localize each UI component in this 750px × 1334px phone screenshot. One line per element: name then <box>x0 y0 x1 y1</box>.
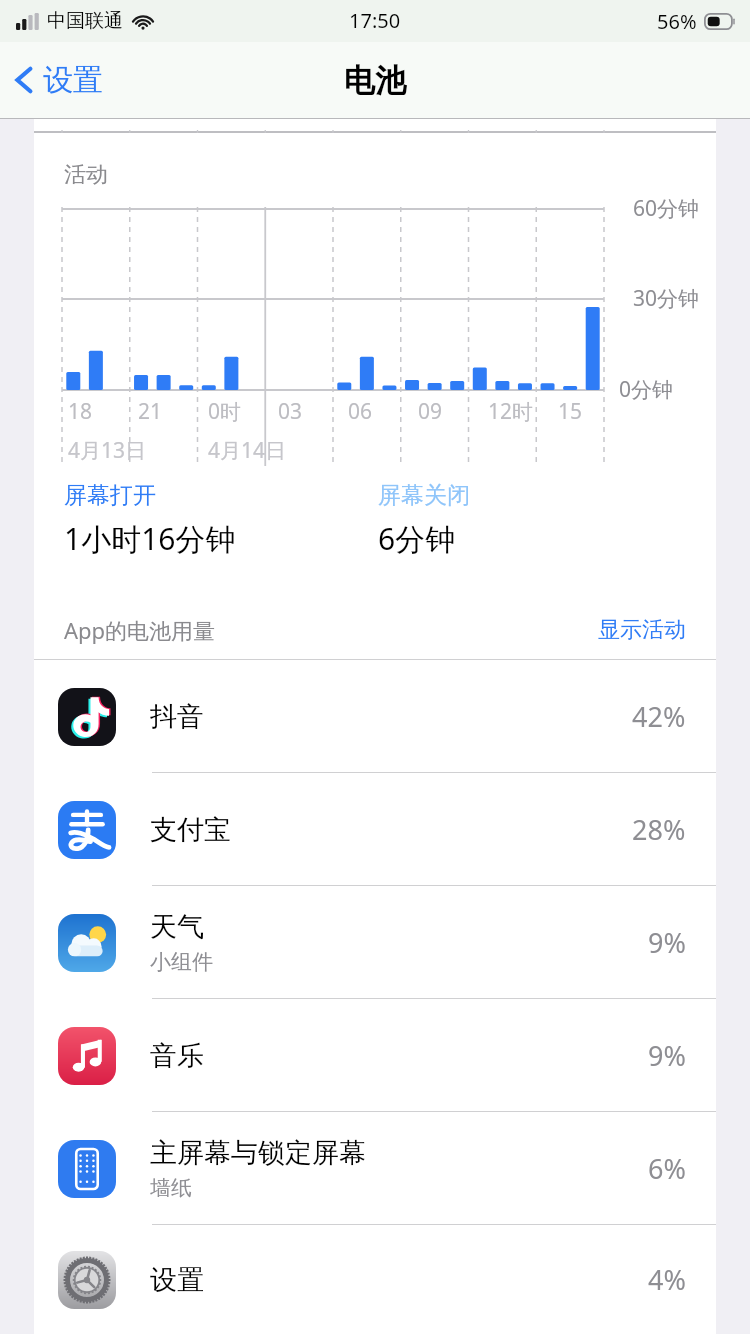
staticText: 15 <box>558 397 583 426</box>
staticText: 4月13日 <box>68 436 147 465</box>
staticText: 30分钟 <box>633 284 700 313</box>
button[interactable]: 主屏幕与锁定屏幕 <box>34 1112 716 1225</box>
button[interactable]: 抖音 <box>34 660 716 773</box>
staticText: 支付宝 <box>150 813 231 847</box>
staticText: 天气 <box>150 910 204 944</box>
staticText: 60分钟 <box>633 194 700 223</box>
staticText: 17:50 <box>349 7 401 34</box>
staticText: 0分钟 <box>619 375 674 404</box>
staticText: 9% <box>648 924 686 961</box>
staticText: 03 <box>278 397 303 426</box>
staticText: 抖音 <box>150 700 204 734</box>
button[interactable]: 显示活动 <box>568 610 716 650</box>
staticText: 活动 <box>64 161 108 189</box>
button[interactable]: 设置 <box>34 1225 716 1334</box>
staticText: 设置 <box>150 1263 204 1297</box>
staticText: 屏幕打开 <box>64 481 156 510</box>
staticText: 9% <box>648 1037 686 1074</box>
staticText: 56% <box>657 8 697 35</box>
staticText: 中国联通 <box>47 9 123 33</box>
staticText: 屏幕关闭 <box>378 481 470 510</box>
staticText: 09 <box>418 397 443 426</box>
staticText: 音乐 <box>150 1039 204 1073</box>
staticText: App的电池用量 <box>64 615 216 645</box>
staticText: 6分钟 <box>378 518 456 559</box>
staticText: 18 <box>68 397 93 426</box>
staticText: 42% <box>632 698 686 735</box>
staticText: 1小时16分钟 <box>64 518 236 559</box>
staticText: 21 <box>138 397 163 426</box>
staticText: 设置 <box>43 61 103 99</box>
button[interactable]: 天气 <box>34 886 716 999</box>
staticText: 6% <box>648 1150 686 1187</box>
staticText: 28% <box>632 811 686 848</box>
staticText: 显示活动 <box>598 616 686 644</box>
staticText: 0时 <box>208 397 242 426</box>
staticText: 电池 <box>344 61 406 100</box>
button[interactable]: 音乐 <box>34 999 716 1112</box>
button[interactable]: 支付宝 <box>34 773 716 886</box>
staticText: 06 <box>348 397 373 426</box>
button[interactable]: 设置 <box>0 53 115 107</box>
staticText: 12时 <box>488 397 534 426</box>
staticText: 主屏幕与锁定屏幕 <box>150 1136 366 1170</box>
staticText: 小组件 <box>150 949 213 975</box>
staticText: 4% <box>648 1261 686 1298</box>
staticText: 4月14日 <box>208 436 287 465</box>
staticText: 墙纸 <box>150 1175 192 1201</box>
